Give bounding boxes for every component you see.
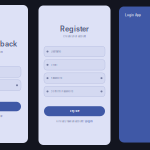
staticText: Sign in to continue to account bbox=[0, 50, 3, 53]
staticText: Already have an account? bbox=[56, 120, 84, 123]
staticText: Password bbox=[50, 77, 62, 80]
staticText: Confirm Password bbox=[50, 90, 73, 93]
staticText: Username bbox=[50, 50, 60, 53]
staticText: Login App bbox=[125, 13, 141, 17]
button[interactable]: Login bbox=[0, 102, 21, 111]
staticText: Don't have an account? Sign up bbox=[0, 114, 3, 117]
staticText: Email bbox=[50, 63, 57, 66]
staticText: Create your account bbox=[63, 35, 86, 38]
staticText: Register bbox=[60, 24, 89, 33]
staticText: Welcome back bbox=[0, 39, 17, 48]
button[interactable]: Register bbox=[44, 106, 105, 116]
staticText: Register bbox=[69, 110, 79, 113]
staticText: Login bbox=[85, 120, 93, 123]
